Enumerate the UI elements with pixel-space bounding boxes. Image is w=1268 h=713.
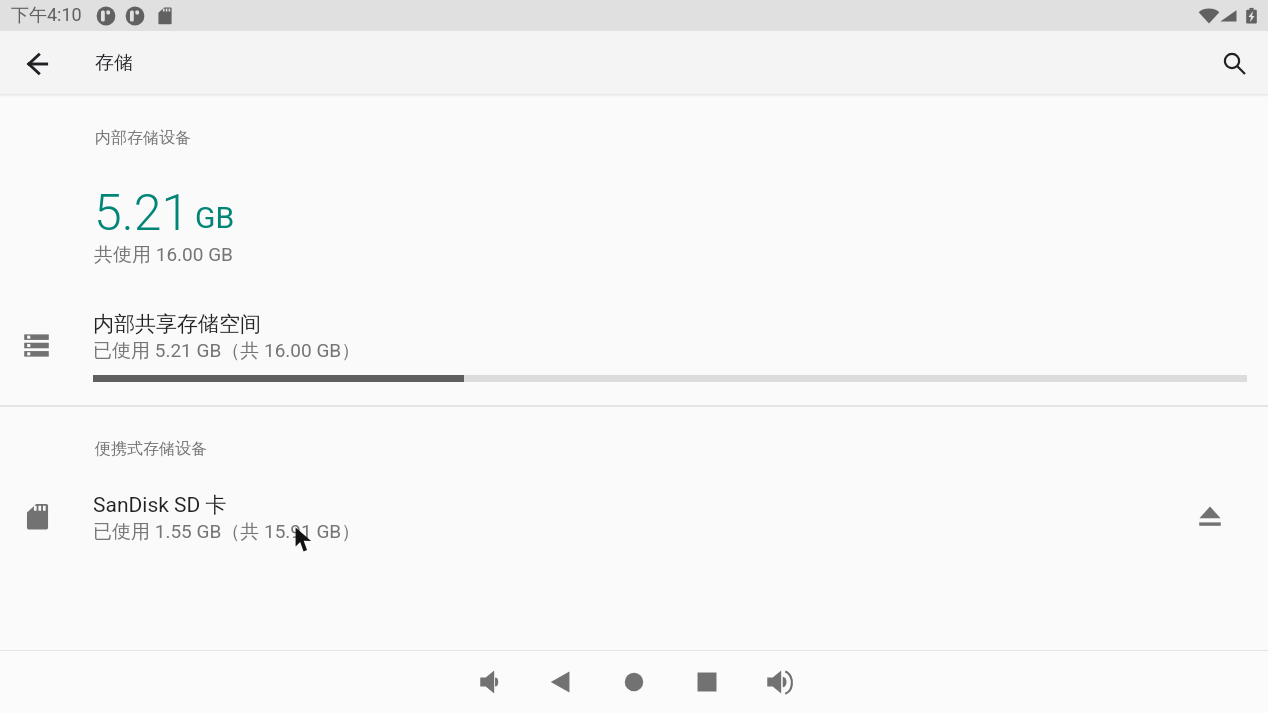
staticText: 存储 <box>95 51 133 75</box>
button[interactable]: SanDisk SD 卡 <box>0 492 1268 554</box>
button[interactable]: Volume up <box>755 659 801 705</box>
staticText: 共使用 16.00 GB <box>94 243 233 267</box>
button[interactable]: Home <box>611 659 657 705</box>
staticText: 便携式存储设备 <box>95 439 207 459</box>
staticText: 5.21 <box>94 184 190 243</box>
button[interactable]: 内部共享存储空间 <box>0 311 1268 385</box>
button[interactable]: Recents <box>683 659 729 705</box>
staticText: 下午4:10 <box>11 4 82 27</box>
button[interactable]: Volume down <box>467 659 513 705</box>
button[interactable]: Back <box>539 659 585 705</box>
staticText: 内部共享存储空间 <box>93 311 261 337</box>
staticText: 已使用 1.55 GB（共 15.91 GB） <box>93 520 361 544</box>
staticText: 内部存储设备 <box>95 128 191 148</box>
staticText: SanDisk SD 卡 <box>93 492 227 518</box>
staticText: 已使用 5.21 GB（共 16.00 GB） <box>93 339 361 363</box>
staticText: GB <box>195 200 235 235</box>
button[interactable]: Eject <box>1152 492 1268 554</box>
button[interactable]: Back <box>0 31 74 94</box>
button[interactable]: Search <box>1201 31 1268 94</box>
